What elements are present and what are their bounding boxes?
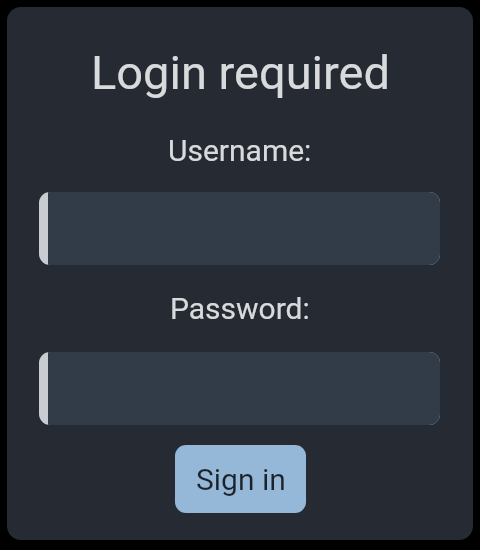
staticText: Login required [91,45,390,100]
staticText: Password: [170,291,310,326]
staticText: Username: [168,133,312,168]
button[interactable]: Sign in [175,445,306,513]
staticText: Sign in [196,462,286,497]
button[interactable] [39,192,440,265]
button[interactable] [39,352,440,425]
